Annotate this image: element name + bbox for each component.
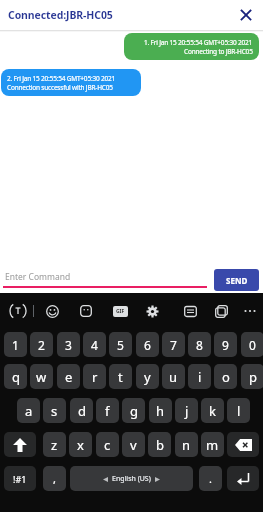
button[interactable]: l [227, 398, 250, 423]
staticText: !#1 [13, 473, 27, 485]
staticText: n [182, 436, 191, 454]
button[interactable]: e [57, 364, 80, 389]
staticText: l [237, 402, 241, 420]
button[interactable]: d [70, 398, 93, 423]
button[interactable] [183, 304, 197, 318]
staticText: c [104, 436, 111, 454]
button[interactable]: . [199, 466, 222, 491]
button[interactable]: k [201, 398, 224, 423]
staticText: i [198, 368, 202, 386]
staticText: x [77, 436, 84, 454]
button[interactable]: z [43, 432, 66, 457]
staticText: k [209, 402, 216, 420]
staticText: s [51, 402, 58, 420]
button[interactable]: 2. Fri Jan 15 20:55:54 GMT+05:30 2021 [1, 69, 141, 96]
button[interactable]: m [201, 432, 224, 457]
staticText: Enter Command [5, 271, 71, 283]
staticText: z [51, 436, 58, 454]
button[interactable] [45, 304, 59, 318]
button[interactable]: s [43, 398, 66, 423]
button[interactable]: , [43, 466, 66, 491]
staticText: q [12, 368, 20, 386]
button[interactable]: 1. Fri Jan 15 20:55:54 GMT+05:30 2021 [124, 33, 259, 60]
button[interactable] [214, 304, 228, 318]
button[interactable]: w [30, 364, 53, 389]
staticText: o [222, 368, 230, 386]
staticText: h [156, 402, 165, 420]
staticText: 9 [222, 337, 229, 353]
staticText: 2 [38, 337, 45, 353]
button[interactable]: 2 [30, 332, 53, 357]
button[interactable] [8, 301, 28, 321]
button[interactable]: y [136, 364, 159, 389]
button[interactable]: 4 [83, 332, 106, 357]
staticText: 1. Fri Jan 15 20:55:54 GMT+05:30 2021 [144, 38, 253, 47]
staticText: p [249, 368, 257, 386]
staticText: 5 [117, 337, 124, 353]
button[interactable]: h [149, 398, 172, 423]
button[interactable]: 6 [136, 332, 159, 357]
staticText: 1 [12, 337, 19, 353]
button[interactable]: p [241, 364, 263, 389]
staticText: f [105, 402, 110, 420]
staticText: b [156, 436, 164, 454]
button[interactable]: r [83, 364, 106, 389]
button[interactable]: b [148, 432, 171, 457]
staticText: 4 [91, 337, 98, 353]
button[interactable]: x [69, 432, 92, 457]
button[interactable]: 1 [4, 332, 27, 357]
staticText: 8 [196, 337, 203, 353]
staticText: g [130, 402, 138, 420]
staticText: v [130, 436, 137, 454]
button[interactable]: q [4, 364, 27, 389]
button[interactable]: u [162, 364, 185, 389]
button[interactable]: GIF [112, 304, 128, 318]
button[interactable]: n [175, 432, 198, 457]
staticText: m [206, 436, 219, 454]
staticText: 7 [170, 337, 177, 353]
button[interactable] [79, 304, 93, 318]
button[interactable]: g [122, 398, 145, 423]
button[interactable] [4, 432, 36, 457]
staticText: Connected:JBR-HC05 [8, 8, 113, 22]
button[interactable] [242, 304, 258, 318]
staticText: w [36, 368, 47, 386]
button[interactable]: 7 [162, 332, 185, 357]
staticText: d [78, 402, 86, 420]
staticText: English (US) [112, 474, 151, 484]
button[interactable]: o [214, 364, 237, 389]
button[interactable] [227, 432, 259, 457]
button[interactable]: 3 [57, 332, 80, 357]
button[interactable]: 9 [214, 332, 237, 357]
staticText: y [144, 368, 151, 386]
button[interactable]: t [109, 364, 132, 389]
staticText: t [118, 368, 123, 386]
staticText: GIF [116, 308, 125, 315]
button[interactable]: !#1 [4, 466, 36, 491]
staticText: a [25, 402, 33, 420]
button[interactable]: 0 [241, 332, 263, 357]
button[interactable]: f [96, 398, 119, 423]
button[interactable]: SEND [214, 269, 259, 291]
button[interactable]: 5 [109, 332, 132, 357]
staticText: Connecting to JBR-HC05 [184, 47, 253, 56]
staticText: 2. Fri Jan 15 20:55:54 GMT+05:30 2021 [7, 74, 116, 83]
staticText: r [92, 368, 98, 386]
button[interactable]: c [96, 432, 119, 457]
button[interactable]: v [122, 432, 145, 457]
button[interactable]: English (US) [70, 466, 193, 491]
button[interactable] [145, 304, 159, 318]
staticText: u [169, 368, 178, 386]
button[interactable]: j [175, 398, 198, 423]
staticText: SEND [226, 275, 248, 286]
staticText: e [65, 368, 73, 386]
button[interactable]: 8 [188, 332, 211, 357]
staticText: 6 [144, 337, 151, 353]
staticText: 0 [249, 337, 256, 353]
button[interactable]: i [188, 364, 211, 389]
button[interactable] [227, 466, 259, 491]
button[interactable] [237, 6, 255, 24]
button[interactable]: a [17, 398, 40, 423]
staticText: 3 [65, 337, 72, 353]
staticText: . [209, 471, 212, 486]
